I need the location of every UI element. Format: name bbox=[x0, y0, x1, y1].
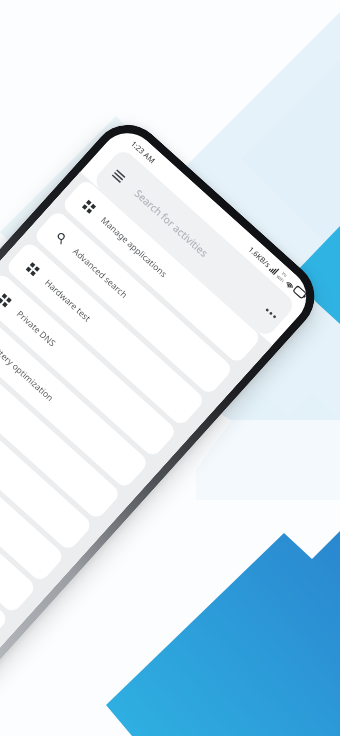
button[interactable]: Hardware test bbox=[4, 240, 206, 427]
button[interactable]: Menu bbox=[91, 147, 297, 339]
button[interactable]: Manage applications bbox=[61, 178, 262, 365]
staticText: Hardware test bbox=[42, 277, 93, 324]
button[interactable] bbox=[0, 396, 65, 583]
button[interactable] bbox=[0, 334, 122, 521]
button[interactable]: More options bbox=[251, 293, 291, 332]
staticText: WiFi bbox=[275, 274, 285, 284]
staticText: Private DNS bbox=[14, 308, 58, 350]
staticText: Vo bbox=[280, 271, 288, 279]
button[interactable]: Battery optimization bbox=[0, 303, 150, 489]
button[interactable] bbox=[0, 428, 37, 614]
button[interactable] bbox=[0, 365, 94, 552]
staticText: 1.6KB/s bbox=[246, 244, 273, 270]
staticText: Advanced search bbox=[70, 246, 130, 301]
staticText: Search for activities bbox=[132, 186, 212, 260]
button[interactable]: Private DNS bbox=[0, 272, 178, 458]
staticText: 1:23 AM bbox=[129, 138, 158, 166]
staticText: Manage applications bbox=[98, 214, 170, 280]
button[interactable] bbox=[0, 459, 9, 645]
staticText: Battery optimization bbox=[0, 339, 56, 404]
button[interactable]: Advanced search bbox=[32, 209, 234, 396]
button[interactable]: Menu bbox=[96, 153, 141, 198]
